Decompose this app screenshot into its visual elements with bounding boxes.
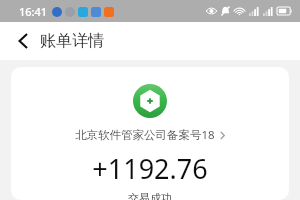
button[interactable]: Back xyxy=(9,27,37,55)
staticText: 北京软件管家公司备案号18 xyxy=(75,127,215,143)
staticText: 账单详情 xyxy=(40,31,104,51)
staticText: 交易成功 xyxy=(128,191,172,200)
staticText: 16:41 xyxy=(19,4,48,19)
button[interactable]: 北京软件管家公司备案号18 xyxy=(71,126,229,144)
staticText: +1192.76 xyxy=(92,150,208,187)
